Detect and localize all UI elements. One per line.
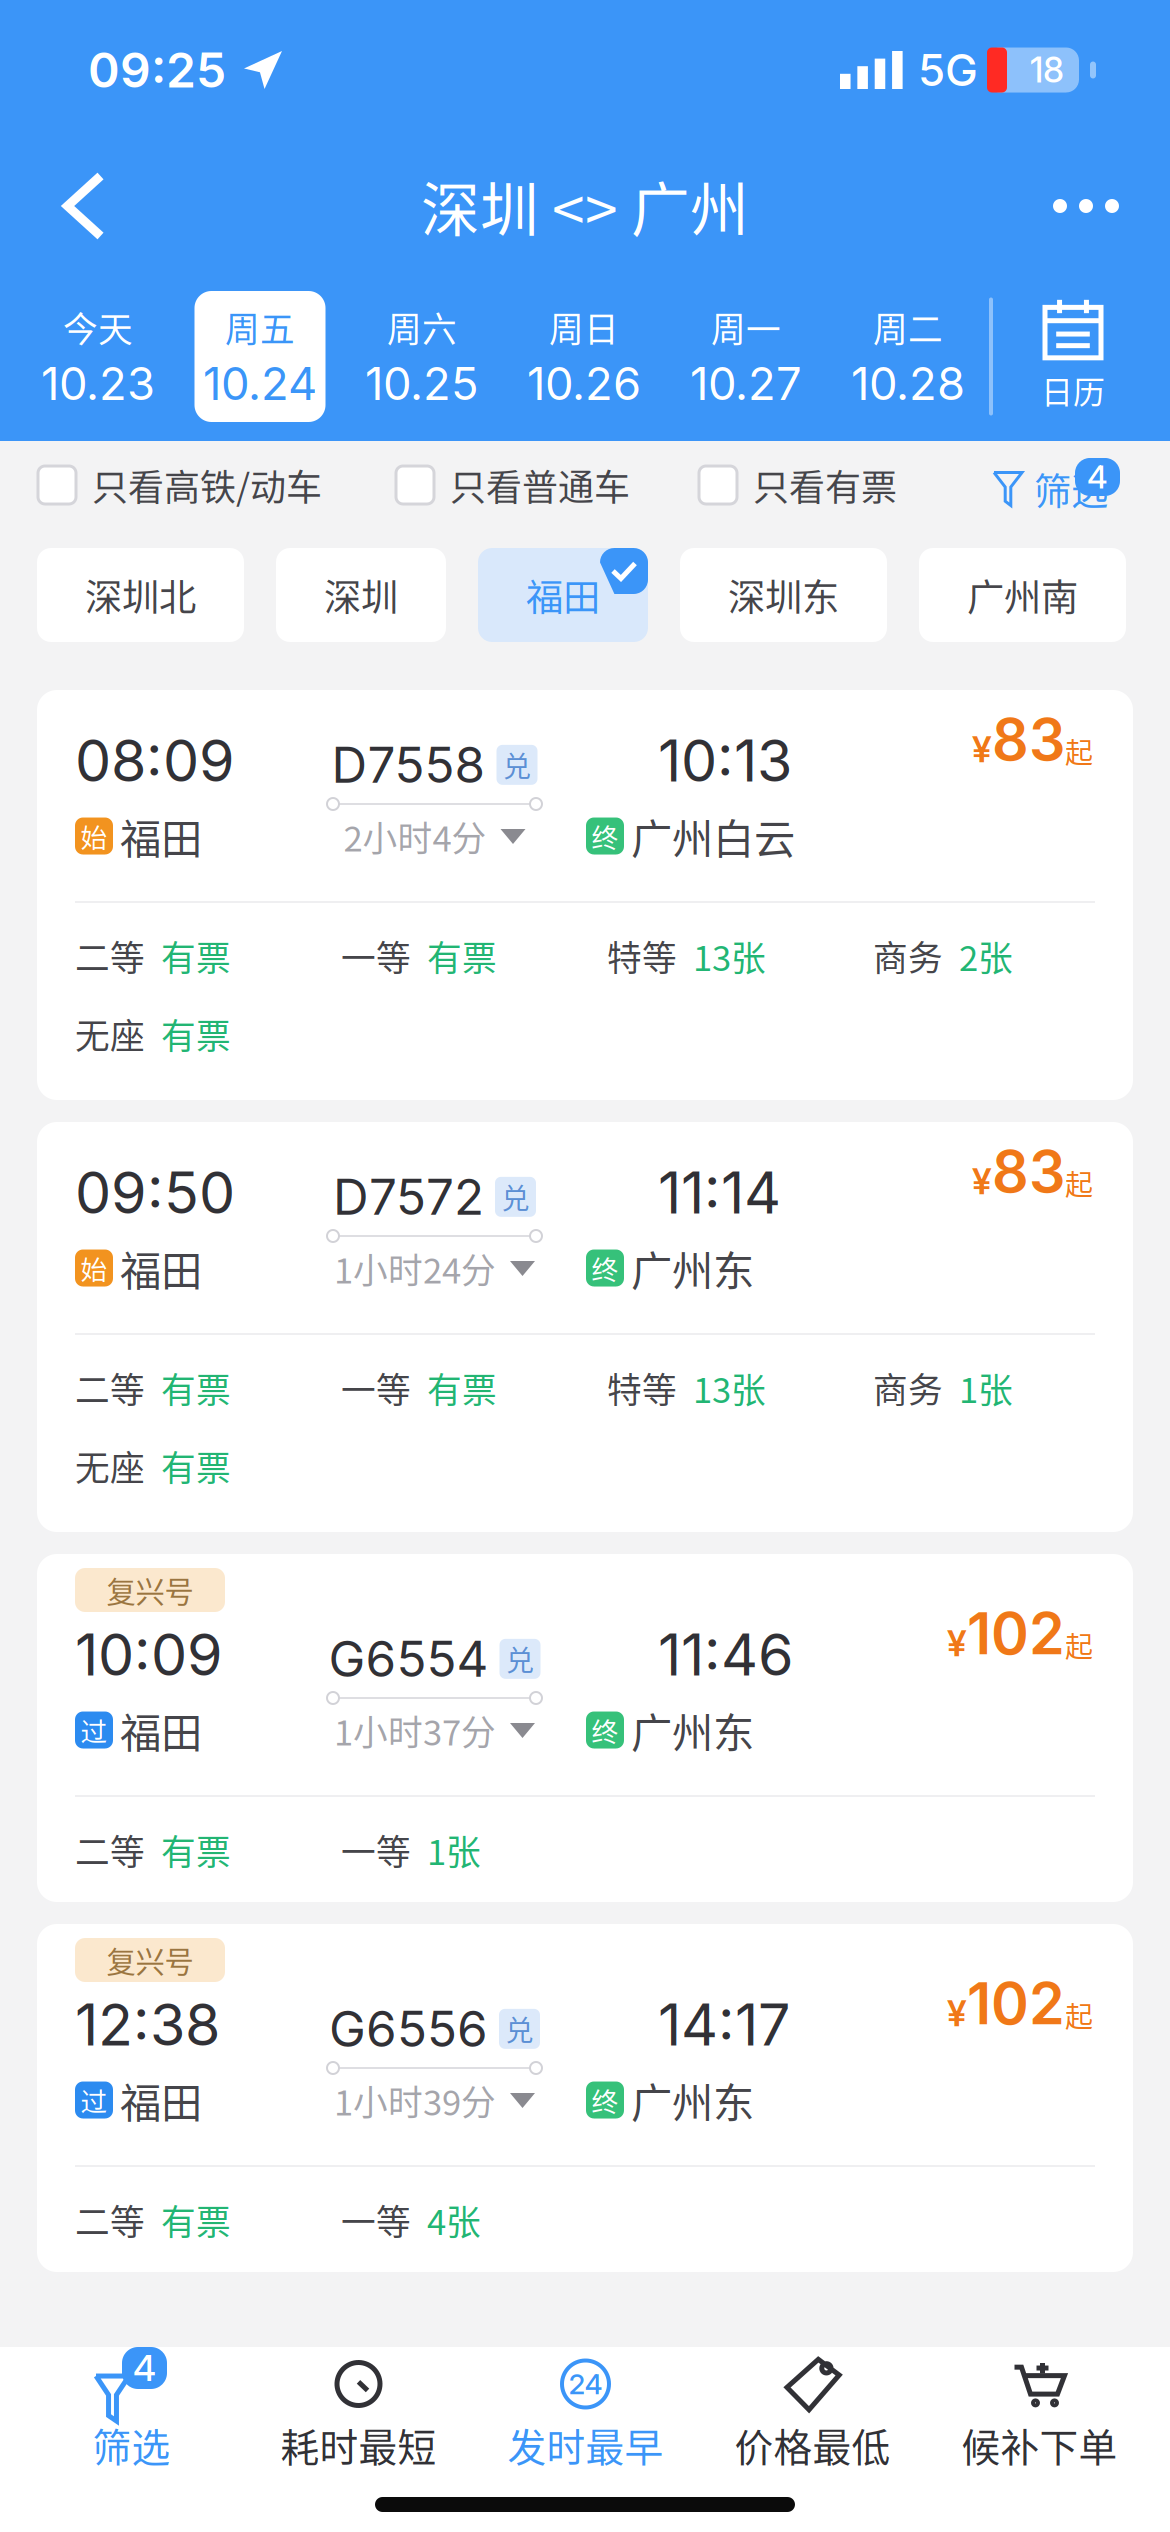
staticText: 广州东 (631, 1700, 754, 1760)
staticText: 09:25 (88, 41, 226, 99)
staticText: 13张 (693, 931, 766, 981)
button[interactable]: 福田 (478, 548, 648, 642)
button[interactable]: 只看有票 (699, 441, 967, 529)
button[interactable]: 08:09 (37, 690, 1133, 1100)
staticText: 深圳东 (728, 568, 839, 622)
staticText: 10.25 (365, 356, 479, 411)
button[interactable]: Calendar (993, 276, 1153, 436)
button[interactable]: 深圳 (276, 548, 446, 642)
staticText: 终 (591, 817, 618, 855)
staticText: 1小时39分 (334, 2075, 496, 2126)
staticText: 价格最低 (734, 2417, 890, 2473)
staticText: 1小时24分 (334, 1243, 496, 1294)
staticText: 1张 (427, 1825, 481, 1875)
staticText: 10.24 (203, 356, 317, 411)
button[interactable]: 深圳北 (37, 548, 244, 642)
staticText: 102 (967, 1599, 1065, 1668)
staticText: 周六 (387, 302, 457, 352)
button[interactable]: 今天 (17, 272, 179, 441)
staticText: 深圳北 (85, 568, 196, 622)
button[interactable]: 复兴号 (37, 1554, 1133, 1902)
button[interactable]: 周二 (827, 272, 989, 441)
button[interactable]: 深圳东 (680, 548, 887, 642)
staticText: 有票 (161, 1009, 231, 1059)
staticText: 13张 (693, 1363, 766, 1413)
staticText: 复兴号 (106, 1939, 193, 1981)
staticText: 始 (80, 1249, 107, 1287)
staticText: 5G (918, 43, 978, 97)
button[interactable]: More (1028, 148, 1144, 264)
staticText: G6556 (329, 1999, 488, 2059)
staticText: 2小时4分 (343, 811, 486, 862)
staticText: 18 (1030, 49, 1064, 91)
button[interactable]: 周六 (341, 272, 503, 441)
staticText: 一等 (341, 1825, 411, 1875)
button[interactable]: 周五 (179, 272, 341, 441)
staticText: 10.27 (690, 356, 802, 411)
staticText: 12:38 (75, 1990, 220, 2059)
staticText: 10:13 (658, 726, 792, 795)
staticText: 只看高铁/动车 (92, 459, 322, 511)
staticText: ¥ (947, 1991, 967, 2035)
staticText: 周五 (225, 302, 295, 352)
button[interactable]: 广州南 (919, 548, 1126, 642)
staticText: 只看有票 (753, 459, 897, 511)
staticText: 83 (992, 705, 1065, 774)
button[interactable]: 价格最低 (699, 2347, 926, 2497)
staticText: 特等 (607, 931, 677, 981)
staticText: 耗时最短 (280, 2417, 436, 2473)
button[interactable]: 耗时最短 (245, 2347, 472, 2497)
button[interactable]: 24 (472, 2347, 699, 2497)
staticText: 24 (568, 2367, 602, 2401)
staticText: 过 (80, 2081, 107, 2119)
staticText: ¥ (947, 1621, 967, 1665)
staticText: 兑 (503, 745, 531, 785)
button[interactable]: 候补下单 (926, 2347, 1153, 2497)
button[interactable]: 4 (18, 2347, 245, 2497)
staticText: 复兴号 (106, 1569, 193, 1611)
staticText: 一等 (341, 931, 411, 981)
staticText: 10.28 (851, 356, 965, 411)
staticText: 筛选 (92, 2417, 170, 2473)
staticText: 终 (591, 1711, 618, 1749)
staticText: D7558 (331, 735, 485, 795)
button[interactable]: 周一 (665, 272, 827, 441)
button[interactable]: 筛选 (994, 441, 1120, 529)
staticText: D7572 (333, 1167, 484, 1227)
staticText: 二等 (75, 2195, 145, 2245)
staticText: 二等 (75, 1363, 145, 1413)
staticText: 今天 (63, 302, 133, 352)
button[interactable]: Back (26, 148, 142, 264)
staticText: 102 (967, 1969, 1065, 2038)
staticText: 候补下单 (961, 2417, 1117, 2473)
button[interactable]: 只看高铁/动车 (38, 441, 396, 529)
staticText: 筛选 (1034, 462, 1108, 516)
staticText: 终 (591, 2081, 618, 2119)
staticText: 有票 (161, 1441, 231, 1491)
staticText: 10.26 (527, 356, 641, 411)
staticText: 4 (1087, 458, 1108, 496)
button[interactable]: 复兴号 (37, 1924, 1133, 2272)
staticText: 有票 (161, 2195, 231, 2245)
button[interactable]: 09:50 (37, 1122, 1133, 1532)
staticText: 4张 (427, 2195, 481, 2245)
staticText: 深圳 <> 广州 (421, 163, 749, 248)
staticText: 83 (992, 1137, 1065, 1206)
button[interactable]: 周日 (503, 272, 665, 441)
staticText: 福田 (120, 2070, 202, 2130)
staticText: 兑 (501, 1177, 529, 1217)
staticText: 终 (591, 1249, 618, 1287)
staticText: 广州东 (631, 2070, 754, 2130)
staticText: 特等 (607, 1363, 677, 1413)
staticText: 有票 (427, 931, 497, 981)
staticText: 10.23 (41, 356, 155, 411)
staticText: 无座 (75, 1441, 145, 1491)
staticText: 福田 (526, 568, 600, 622)
button[interactable]: 只看普通车 (396, 441, 699, 529)
